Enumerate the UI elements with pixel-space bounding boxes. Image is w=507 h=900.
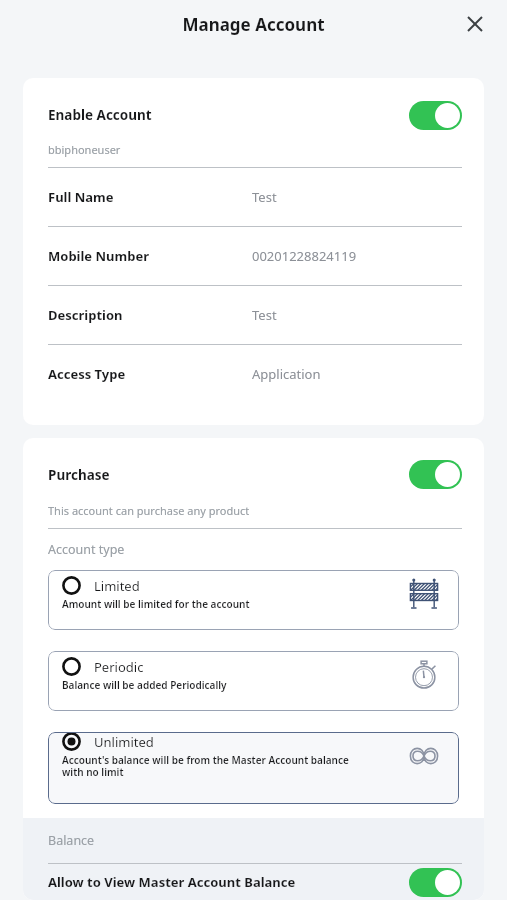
staticText: Allow to View Master Account Balance	[48, 873, 296, 891]
staticText: Test	[252, 306, 277, 324]
staticText: Amount will be limited for the account	[62, 597, 250, 611]
button[interactable]: Access Type	[48, 345, 462, 403]
staticText: Mobile Number	[48, 247, 149, 265]
staticText: Access Type	[48, 365, 126, 383]
button[interactable]: Periodic	[48, 651, 459, 711]
staticText: Manage Account	[182, 13, 325, 36]
staticText: 00201228824119	[252, 247, 357, 265]
button[interactable]: Full Name	[48, 168, 462, 226]
staticText: Balance will be added Periodically	[62, 678, 227, 692]
staticText: Purchase	[48, 466, 110, 484]
staticText: Description	[48, 306, 123, 324]
button[interactable]: Purchase	[48, 452, 462, 497]
staticText: Application	[252, 365, 321, 383]
button[interactable]: Mobile Number	[48, 227, 462, 285]
staticText: Test	[252, 188, 277, 206]
staticText: Full Name	[48, 188, 114, 206]
button[interactable]: Toggle	[409, 868, 462, 897]
button[interactable]: Toggle	[409, 101, 462, 130]
staticText: Limited	[94, 577, 140, 595]
staticText: This account can purchase any product	[48, 503, 250, 518]
staticText: Unlimited	[94, 733, 154, 751]
button[interactable]: Enable Account	[48, 92, 462, 138]
button[interactable]: Description	[48, 286, 462, 344]
button[interactable]: Unlimited	[48, 732, 459, 804]
staticText: bbiphoneuser	[48, 142, 121, 157]
staticText: Periodic	[94, 658, 144, 676]
button[interactable]: Allow to View Master Account Balance	[48, 864, 462, 900]
staticText: Account type	[48, 541, 125, 558]
staticText: Balance	[48, 832, 95, 849]
button[interactable]: Toggle	[409, 460, 462, 489]
button[interactable]: Close	[457, 6, 493, 42]
staticText: Enable Account	[48, 106, 152, 124]
button[interactable]: Limited	[48, 570, 459, 630]
staticText: Account's balance will be from the Maste…	[62, 753, 349, 779]
